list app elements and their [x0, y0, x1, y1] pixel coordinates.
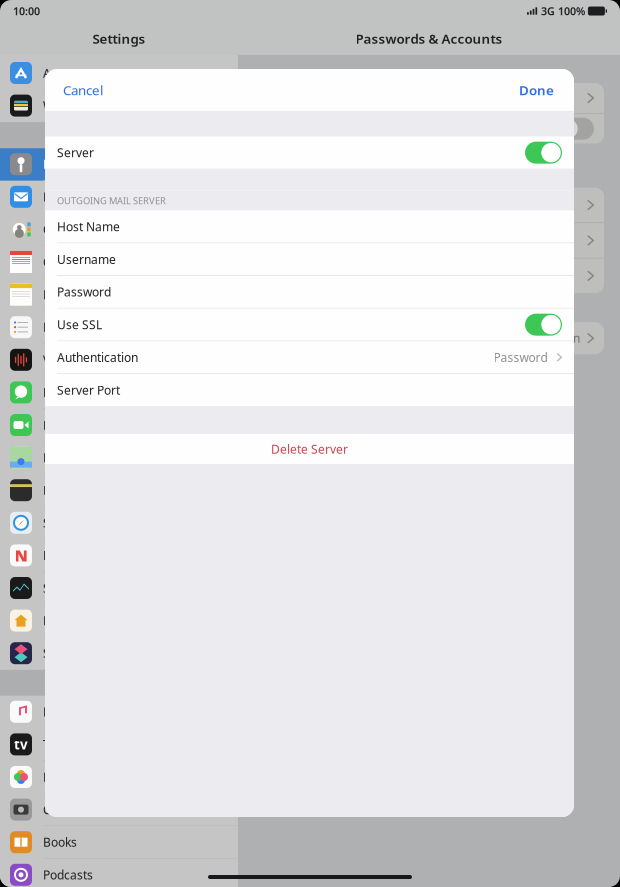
button[interactable]: Use SSL: [45, 309, 574, 341]
staticText: Password: [57, 284, 111, 300]
staticText: Server Port: [57, 382, 120, 398]
staticText: Passwords & Accounts: [43, 156, 169, 172]
button[interactable]: Username: [45, 243, 574, 275]
staticText: FaceTime: [43, 417, 97, 433]
button[interactable]: App Store: [0, 57, 238, 90]
button[interactable]: Shortcuts: [0, 637, 238, 670]
button[interactable]: Authentication: [45, 341, 574, 373]
staticText: Cancel: [63, 81, 103, 99]
staticText: Delete Server: [271, 441, 348, 457]
staticText: Mail: [43, 189, 67, 205]
button[interactable]: Wallet: [0, 90, 238, 122]
button[interactable]: Photos: [0, 761, 238, 794]
button[interactable]: Stocks: [0, 572, 238, 605]
staticText: 3G 100%: [538, 4, 588, 18]
staticText: N: [14, 545, 27, 566]
staticText: Home: [43, 613, 77, 628]
button[interactable]: Reminders: [0, 311, 238, 344]
staticText: Messages: [43, 384, 100, 400]
button[interactable]: Mail: [0, 181, 238, 213]
staticText: News: [43, 547, 74, 563]
staticText: Wallet: [43, 98, 78, 113]
button[interactable]: Safari: [0, 507, 238, 539]
staticText: Maps: [43, 450, 74, 465]
staticText: Use SSL: [57, 317, 102, 333]
button[interactable]: Delete Server: [45, 434, 574, 464]
button[interactable]: Podcasts: [0, 859, 238, 887]
staticText: Measure: [43, 482, 93, 498]
staticText: OUTGOING MAIL SERVER: [57, 194, 166, 207]
staticText: Passwords & Accounts: [355, 30, 502, 47]
staticText: Username: [57, 251, 116, 267]
staticText: Server: [57, 145, 94, 161]
staticText: Voice Memos: [43, 352, 118, 368]
staticText: Password: [493, 349, 547, 365]
button[interactable]: Voice Memos: [0, 344, 238, 376]
staticText: Camera: [43, 802, 88, 817]
staticText: Safari: [43, 515, 76, 531]
button[interactable]: tv: [0, 728, 238, 761]
button[interactable]: Cancel: [59, 73, 107, 107]
staticText: Podcasts: [43, 867, 93, 883]
staticText: Settings: [92, 30, 145, 47]
button[interactable]: Maps: [0, 442, 238, 474]
staticText: App Store: [43, 65, 98, 81]
button[interactable]: N: [0, 539, 238, 572]
button[interactable]: Music: [0, 696, 238, 728]
button[interactable]: Home: [0, 605, 238, 637]
button[interactable]: Measure: [0, 474, 238, 507]
staticText: Notes: [43, 287, 76, 302]
button[interactable]: Notes: [0, 279, 238, 311]
staticText: Authentication: [499, 330, 580, 346]
button[interactable]: Calendar: [0, 246, 238, 279]
staticText: Music: [43, 704, 76, 720]
staticText: Photos: [43, 769, 81, 785]
staticText: Shortcuts: [43, 645, 96, 661]
staticText: Books: [43, 834, 77, 850]
staticText: 10:00: [13, 4, 40, 18]
button[interactable]: Contacts: [0, 213, 238, 246]
staticText: Reminders: [43, 319, 103, 335]
button[interactable]: Password: [45, 276, 574, 308]
button[interactable]: Messages: [0, 376, 238, 409]
button[interactable]: Camera: [0, 794, 238, 826]
button[interactable]: Passwords & Accounts: [0, 148, 238, 181]
staticText: Contacts: [43, 221, 92, 237]
button[interactable]: FaceTime: [0, 409, 238, 442]
button[interactable]: Server Port: [45, 374, 574, 406]
button[interactable]: Host Name: [45, 211, 574, 242]
staticText: Calendar: [43, 254, 94, 270]
staticText: TV: [43, 736, 57, 752]
button[interactable]: Books: [0, 826, 238, 859]
staticText: Host Name: [57, 219, 120, 234]
staticText: Done: [519, 81, 554, 99]
staticText: Stocks: [43, 580, 79, 596]
button[interactable]: Server: [45, 137, 574, 169]
button[interactable]: Done: [515, 73, 558, 107]
staticText: Authentication: [57, 349, 138, 365]
staticText: tv: [14, 735, 28, 753]
